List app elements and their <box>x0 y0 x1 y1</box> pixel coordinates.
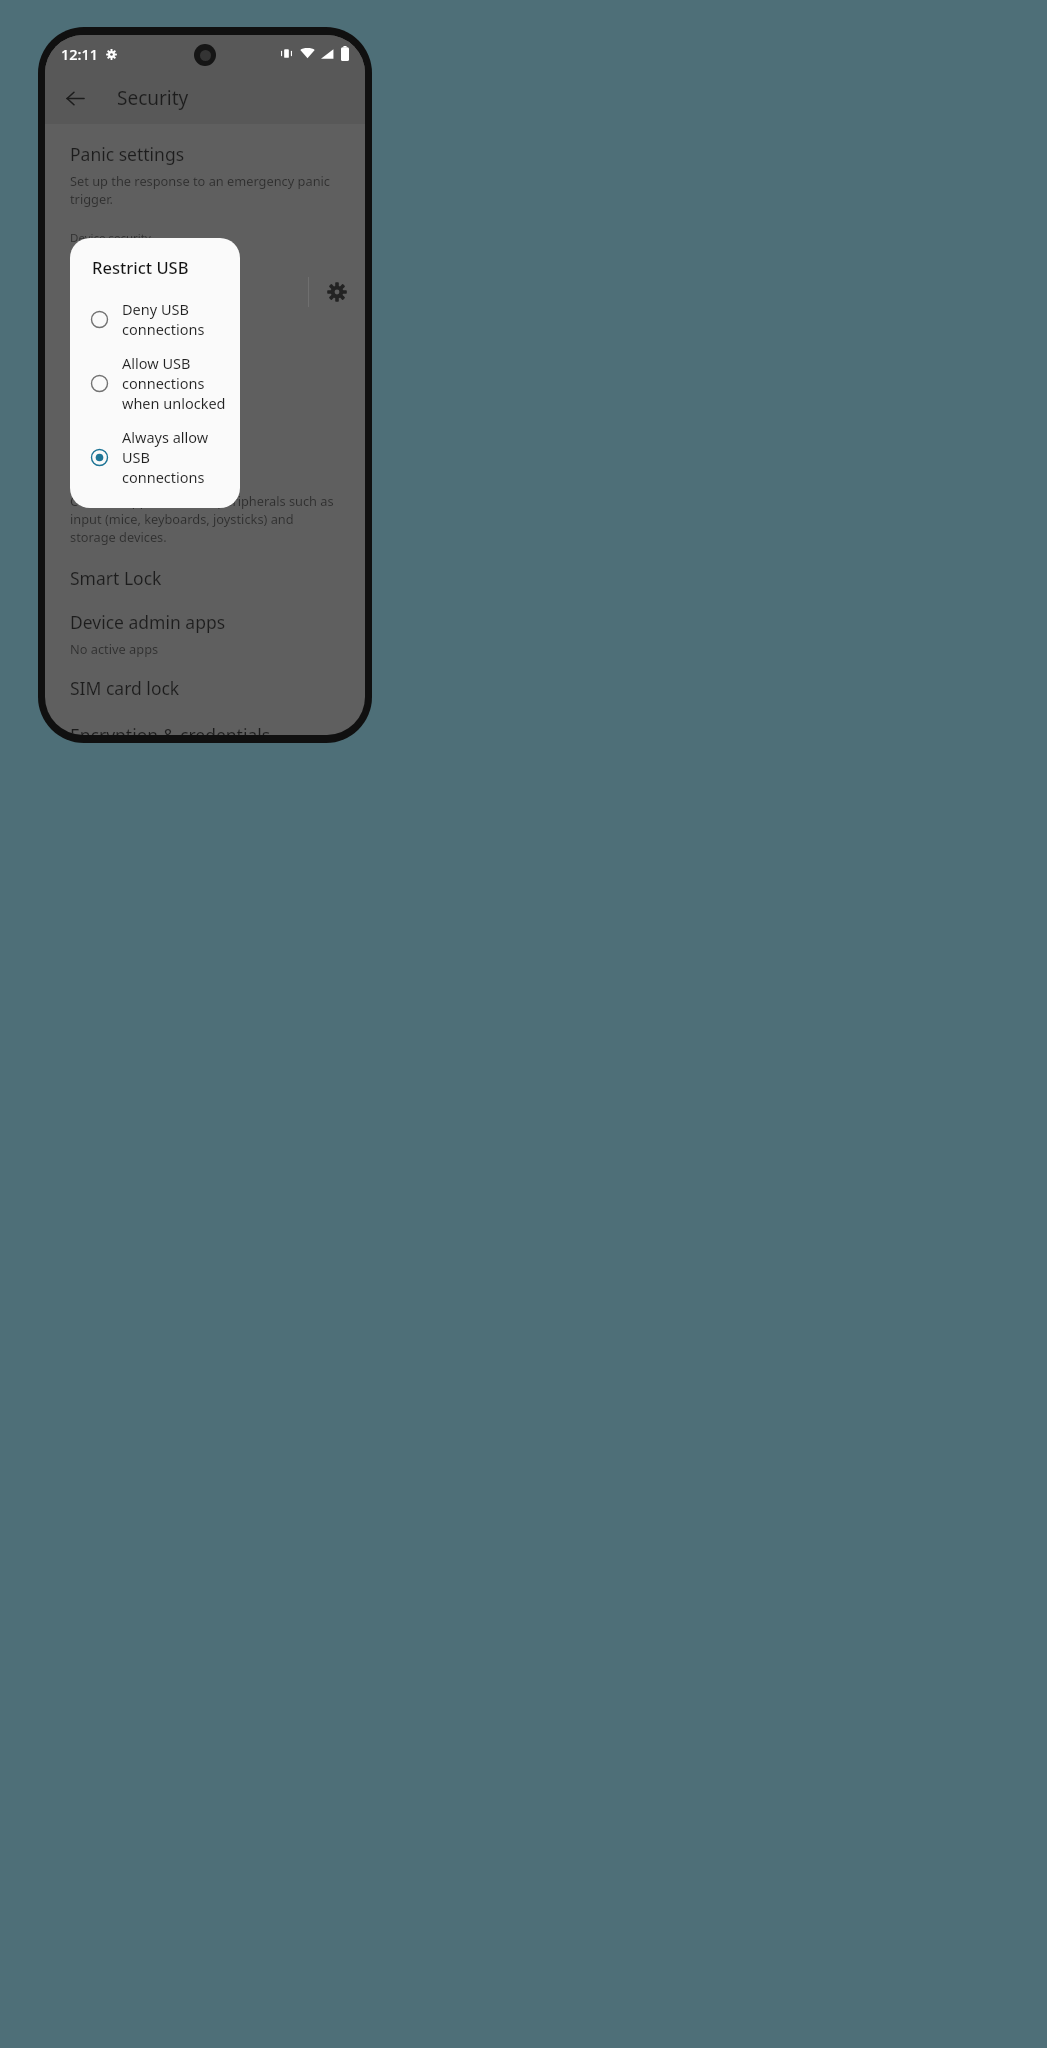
staticText: Always allow USB connections <box>122 427 228 487</box>
button[interactable]: Restrict USB <box>45 462 365 546</box>
staticText: SIM card lock <box>70 676 180 700</box>
button[interactable]: Device admin apps <box>45 610 365 657</box>
staticText: 12:11 <box>61 44 99 64</box>
staticText: Auto lock <box>70 401 147 425</box>
staticText: Immediately <box>70 431 146 448</box>
staticText: Restrict USB <box>70 462 171 486</box>
button[interactable]: Always allow USB connections <box>70 420 240 494</box>
staticText: Security <box>117 85 189 111</box>
staticText: No active apps <box>70 640 159 657</box>
staticText: Fingerprint <box>70 338 162 362</box>
staticText: Allow USB connections when unlocked <box>122 353 228 413</box>
button[interactable]: Fingerprint <box>45 338 365 385</box>
staticText: Device admin apps <box>70 610 226 634</box>
staticText: Pattern <box>70 299 115 316</box>
staticText: Restrict USB <box>92 256 189 278</box>
staticText: Smart Lock <box>70 566 162 590</box>
button[interactable]: Allow USB connections when unlocked <box>70 346 240 420</box>
button[interactable]: Screen lock <box>45 269 308 316</box>
button[interactable]: SIM card lock <box>45 676 365 700</box>
staticText: Set up the response to an emergency pani… <box>70 172 340 208</box>
staticText: Device security <box>70 230 151 246</box>
staticText: Encryption & credentials <box>70 723 271 735</box>
button[interactable]: Auto lock <box>45 401 365 448</box>
staticText: Add, remove fingerprints <box>70 368 221 385</box>
staticText: Panic settings <box>70 142 185 166</box>
button[interactable]: Encryption & credentials <box>45 723 365 735</box>
button[interactable]: Smart Lock <box>45 566 365 590</box>
staticText: Deny USB connections <box>122 299 228 339</box>
button[interactable]: Panic settings <box>45 142 365 208</box>
button[interactable]: Screen lock settings <box>309 264 365 320</box>
staticText: Screen lock <box>70 269 163 293</box>
staticText: Control support for USB peripherals such… <box>70 492 340 546</box>
button[interactable]: Deny USB connections <box>70 292 240 346</box>
button[interactable]: Back <box>53 76 97 120</box>
